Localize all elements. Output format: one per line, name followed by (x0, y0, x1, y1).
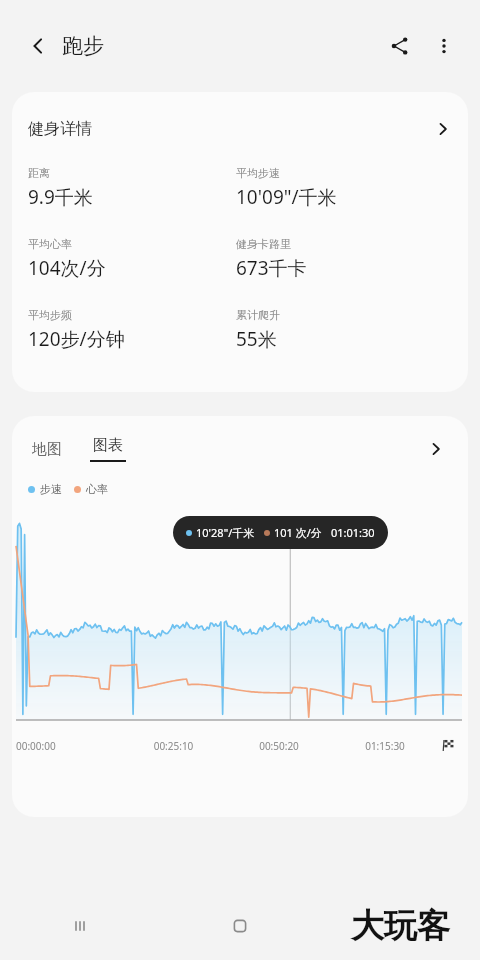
staticText: 健身卡路里 (236, 237, 291, 251)
staticText: 01:01:30 (331, 525, 375, 540)
staticText: 累计爬升 (236, 308, 280, 322)
staticText: 平均步频 (28, 308, 72, 322)
button[interactable]: Expand chart (420, 433, 452, 465)
staticText: 健身详情 (28, 119, 92, 139)
staticText: 平均心率 (28, 237, 72, 251)
staticText: 00:00:00 (16, 739, 121, 753)
staticText: 图表 (93, 436, 123, 455)
button[interactable]: Home (160, 892, 320, 960)
staticText: 101 次/分 (274, 525, 322, 540)
button[interactable]: 健身详情 (12, 92, 468, 166)
staticText: 00:50:20 (226, 739, 332, 753)
button[interactable]: Share (378, 24, 422, 68)
staticText: 10'09"/千米 (236, 184, 337, 210)
staticText: 距离 (28, 166, 50, 180)
button[interactable]: Recent apps (0, 892, 160, 960)
staticText: 9.9千米 (28, 184, 93, 210)
staticText: 673千卡 (236, 255, 307, 281)
staticText: 大玩客 (351, 905, 450, 947)
staticText: 地图 (32, 440, 62, 459)
button[interactable]: Back (16, 24, 60, 68)
staticText: 104次/分 (28, 255, 106, 281)
staticText: 步速 (40, 482, 62, 496)
staticText: 01:15:30 (332, 739, 438, 753)
staticText: 10'28"/千米 (196, 525, 255, 540)
staticText: 55米 (236, 326, 277, 352)
button[interactable]: Back (320, 892, 480, 960)
staticText: 120步/分钟 (28, 326, 125, 352)
button[interactable]: 图表 (86, 436, 130, 462)
button[interactable]: More options (422, 24, 466, 68)
staticText: 平均步速 (236, 166, 280, 180)
button[interactable]: 10'28"/千米 (173, 516, 388, 549)
staticText: 跑步 (62, 33, 104, 59)
staticText: 心率 (86, 482, 108, 496)
staticText: 00:25:10 (121, 739, 226, 753)
button[interactable]: 地图 (28, 434, 66, 465)
